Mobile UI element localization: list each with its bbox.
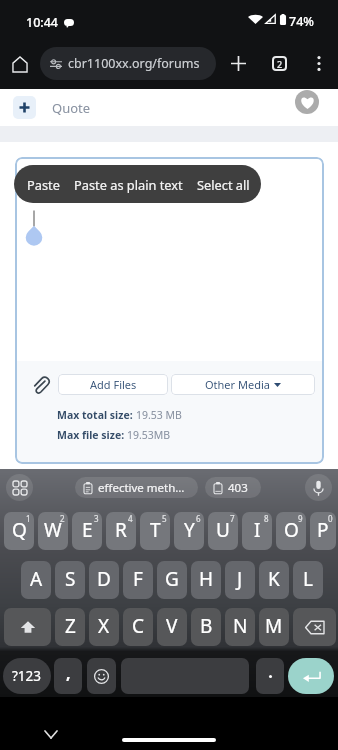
staticText: 8: [264, 513, 269, 524]
staticText: P: [317, 517, 329, 543]
button[interactable]: Y: [174, 512, 204, 550]
staticText: M: [265, 613, 283, 639]
button[interactable]: More options: [305, 50, 332, 77]
button[interactable]: Paste: [27, 176, 60, 193]
button[interactable]: effective meth…: [75, 477, 198, 498]
staticText: H: [199, 566, 214, 592]
button[interactable]: [293, 608, 336, 646]
button[interactable]: [4, 608, 51, 646]
button[interactable]: K: [259, 561, 289, 599]
button[interactable]: P: [310, 512, 336, 550]
button[interactable]: S: [55, 561, 85, 599]
button[interactable]: J: [225, 561, 255, 599]
staticText: Quote: [52, 99, 91, 117]
staticText: Other Media: [205, 377, 270, 392]
button[interactable]: [256, 658, 284, 694]
button[interactable]: L: [293, 561, 323, 599]
staticText: Add Files: [90, 377, 137, 392]
button[interactable]: ,: [54, 658, 82, 694]
staticText: G: [165, 566, 179, 592]
button[interactable]: E: [72, 512, 102, 550]
button[interactable]: New tab: [225, 50, 252, 77]
button[interactable]: W: [38, 512, 68, 550]
button[interactable]: Paste as plain text: [74, 176, 183, 193]
staticText: 7: [230, 513, 235, 524]
staticText: 10:44: [26, 14, 59, 31]
button[interactable]: T: [140, 512, 170, 550]
button[interactable]: R: [106, 512, 136, 550]
button[interactable]: Keyboard options: [6, 474, 33, 501]
button[interactable]: B: [191, 608, 221, 646]
staticText: Paste: [27, 176, 60, 193]
button[interactable]: M: [259, 608, 289, 646]
button[interactable]: I: [242, 512, 272, 550]
button[interactable]: G: [157, 561, 187, 599]
button[interactable]: O: [276, 512, 306, 550]
button[interactable]: Like: [295, 90, 319, 114]
staticText: E: [82, 517, 93, 543]
staticText: T: [150, 517, 161, 543]
staticText: L: [303, 566, 313, 592]
staticText: R: [115, 517, 127, 543]
staticText: Z: [65, 613, 76, 639]
button[interactable]: A: [21, 561, 51, 599]
staticText: X: [98, 613, 110, 639]
button[interactable]: Q: [4, 512, 34, 550]
button[interactable]: Other Media: [171, 374, 315, 395]
staticText: 3: [94, 513, 99, 524]
button[interactable]: X: [89, 608, 119, 646]
button[interactable]: C: [123, 608, 153, 646]
staticText: O: [284, 517, 299, 543]
staticText: N: [233, 613, 248, 639]
button[interactable]: Select all: [197, 176, 250, 193]
staticText: 403: [228, 480, 248, 496]
button[interactable]: V: [157, 608, 187, 646]
staticText: 5: [162, 513, 167, 524]
staticText: 2: [60, 513, 65, 524]
button[interactable]: H: [191, 561, 221, 599]
button[interactable]: Enter: [288, 658, 334, 694]
button[interactable]: Emoji: [87, 658, 116, 694]
button[interactable]: F: [123, 561, 153, 599]
staticText: Y: [184, 517, 195, 543]
staticText: ,: [66, 662, 71, 684]
staticText: W: [44, 517, 62, 543]
button[interactable]: Space: [121, 658, 249, 694]
button[interactable]: U: [208, 512, 238, 550]
staticText: 4: [128, 513, 133, 524]
staticText: C: [132, 613, 145, 639]
staticText: 74%: [289, 13, 314, 30]
button[interactable]: Z: [55, 608, 85, 646]
staticText: 19.53 MB: [136, 408, 182, 422]
staticText: Q: [12, 517, 27, 543]
staticText: I: [254, 517, 261, 543]
button[interactable]: 403: [205, 477, 261, 498]
staticText: Select all: [197, 176, 250, 193]
staticText: ?123: [12, 667, 42, 685]
button[interactable]: Insert: [13, 96, 36, 119]
button[interactable]: N: [225, 608, 255, 646]
staticText: Max total size:: [57, 408, 136, 422]
button[interactable]: ?123: [3, 658, 51, 694]
staticText: 2: [277, 58, 283, 70]
staticText: S: [65, 566, 76, 592]
button[interactable]: Add Files: [58, 374, 168, 395]
staticText: 1: [26, 513, 31, 524]
staticText: 0: [328, 513, 333, 524]
staticText: B: [200, 613, 213, 639]
staticText: 9: [298, 513, 303, 524]
staticText: cbr1100xx.org/forums: [68, 55, 200, 72]
button[interactable]: cbr1100xx.org/forums: [40, 47, 216, 80]
button[interactable]: D: [89, 561, 119, 599]
button[interactable]: Tabs: [266, 50, 293, 77]
staticText: K: [268, 566, 280, 592]
staticText: F: [133, 566, 143, 592]
button[interactable]: Voice input: [305, 474, 332, 501]
button[interactable]: Home: [6, 50, 34, 78]
staticText: 6: [196, 513, 201, 524]
staticText: V: [166, 613, 178, 639]
staticText: J: [237, 566, 243, 592]
staticText: effective meth…: [98, 480, 185, 496]
staticText: Paste as plain text: [74, 176, 183, 193]
button[interactable]: Hide keyboard: [38, 721, 64, 747]
